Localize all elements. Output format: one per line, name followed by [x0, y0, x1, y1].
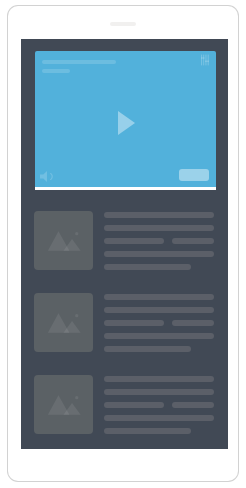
button[interactable]: Fullscreen [179, 169, 209, 181]
button[interactable] [34, 211, 214, 270]
button[interactable]: Video settings [201, 55, 209, 65]
button[interactable] [34, 293, 214, 352]
button[interactable]: Video settings [35, 51, 216, 190]
button[interactable] [34, 375, 214, 434]
button[interactable]: Play [118, 111, 135, 135]
button[interactable]: Volume [40, 171, 52, 182]
